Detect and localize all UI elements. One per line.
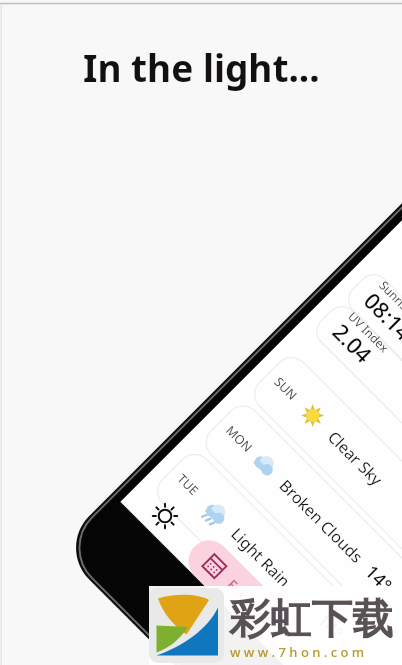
staticText: In the light... — [83, 42, 320, 92]
